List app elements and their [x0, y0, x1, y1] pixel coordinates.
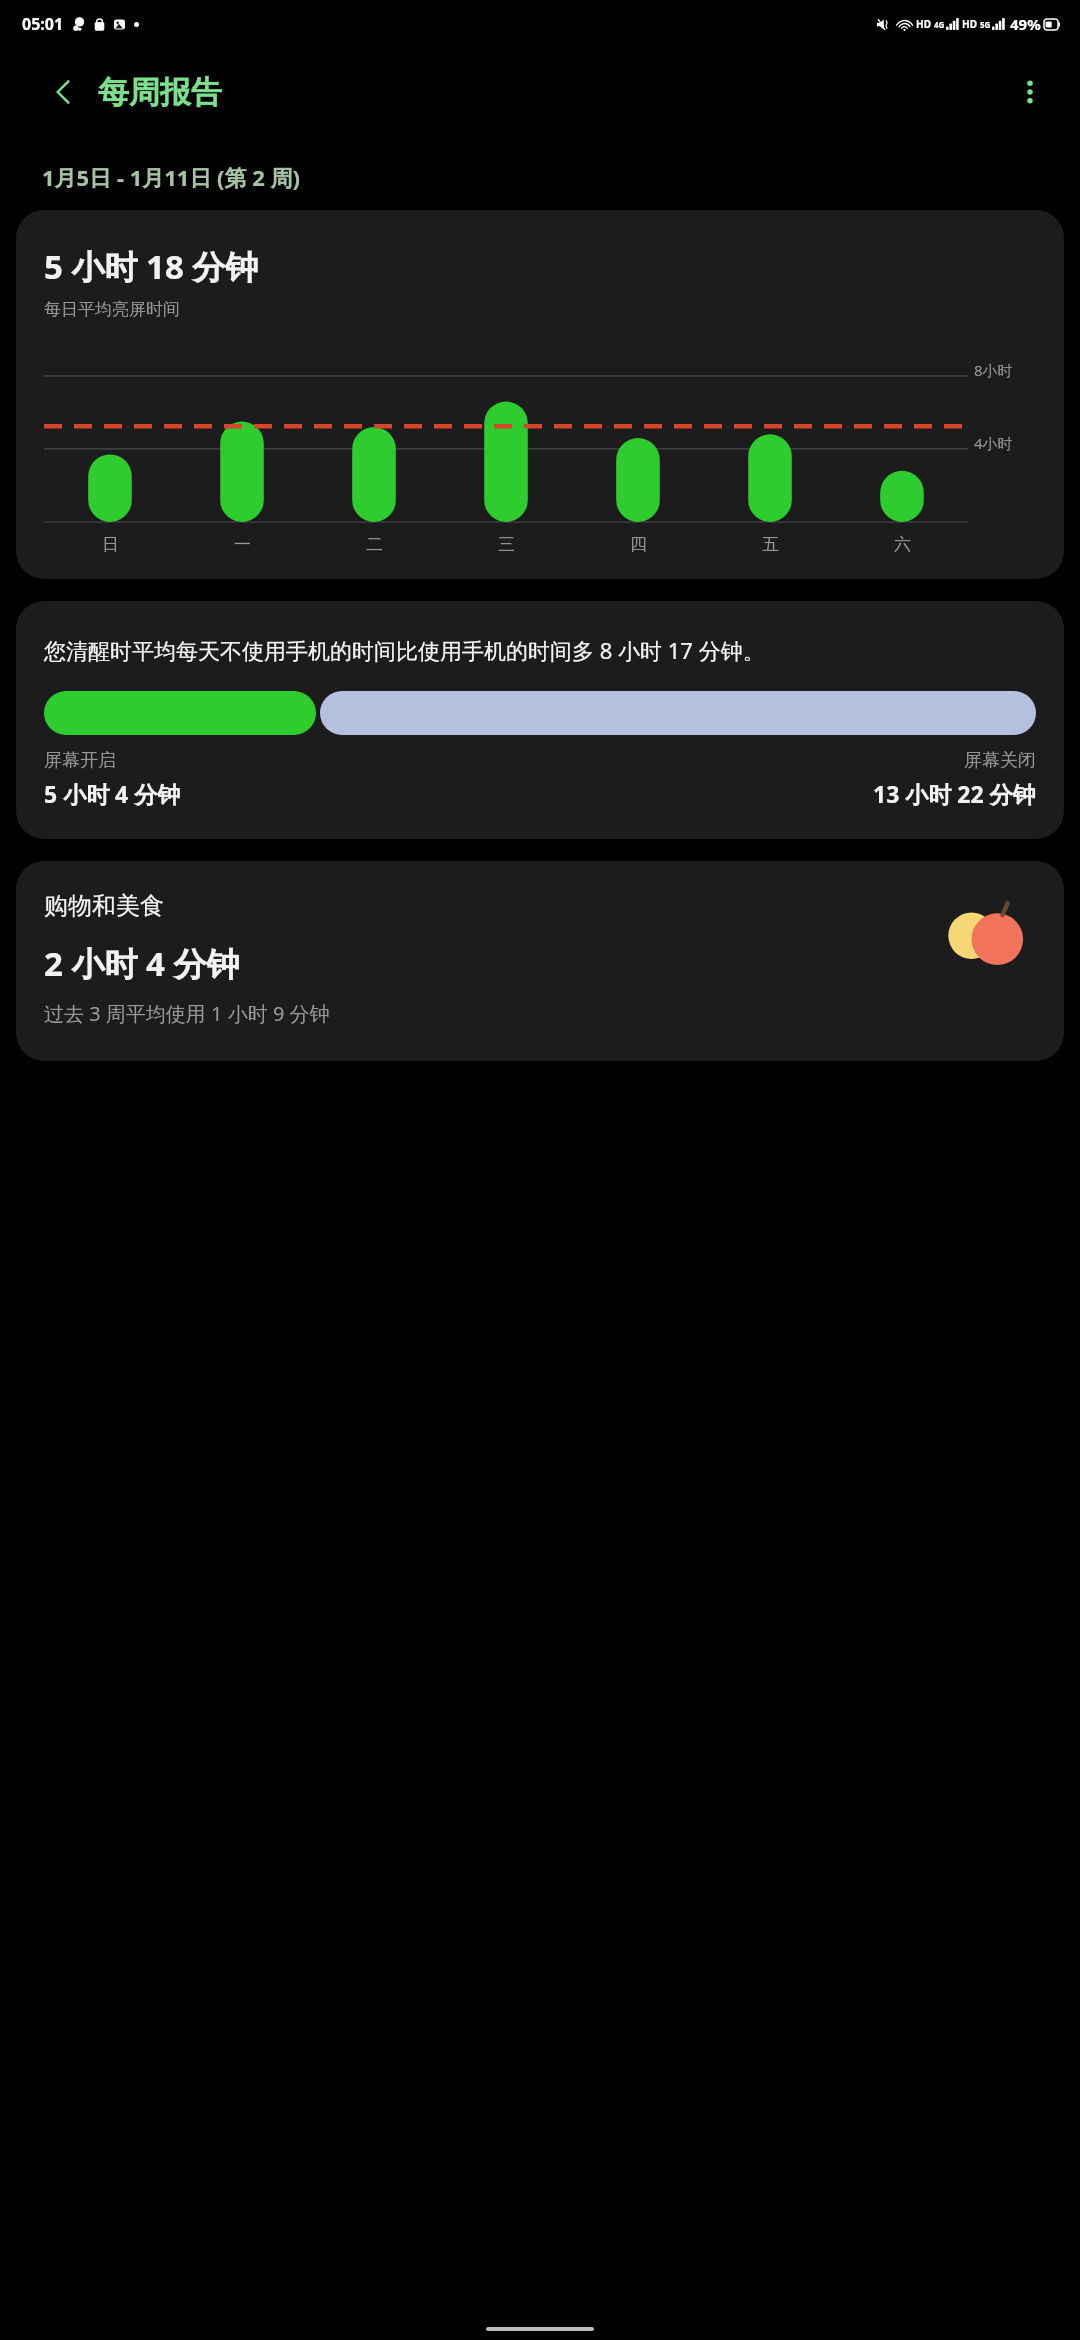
staticText: 每日平均亮屏时间 — [44, 299, 180, 320]
staticText: 四 — [630, 534, 647, 555]
staticText: 4G — [934, 19, 945, 30]
staticText: 您清醒时平均每天不使用手机的时间比使用手机的时间多 8 小时 17 分钟。 — [44, 635, 765, 665]
staticText: 13 小时 22 分钟 — [873, 778, 1036, 809]
staticText: 8小时 — [974, 360, 1013, 380]
staticText: HD — [916, 17, 931, 31]
staticText: 4小时 — [974, 433, 1013, 453]
button[interactable]: 5 小时 18 分钟 — [16, 210, 1064, 579]
button[interactable]: 您清醒时平均每天不使用手机的时间比使用手机的时间多 8 小时 17 分钟。 — [16, 601, 1064, 839]
staticText: 每周报告 — [98, 73, 222, 112]
staticText: 购物和美食 — [44, 891, 164, 921]
staticText: HD — [962, 17, 977, 31]
staticText: 2 小时 4 分钟 — [44, 941, 240, 986]
staticText: 5 小时 18 分钟 — [44, 244, 259, 289]
staticText: 三 — [498, 534, 515, 555]
staticText: 过去 3 周平均使用 1 小时 9 分钟 — [44, 1000, 330, 1027]
staticText: 屏幕开启 — [44, 749, 116, 772]
staticText: 屏幕关闭 — [964, 749, 1036, 772]
staticText: 五 — [762, 534, 779, 555]
staticText: 49% — [1010, 14, 1041, 34]
staticText: 5G — [980, 19, 991, 30]
staticText: 一 — [234, 534, 251, 555]
staticText: 日 — [102, 534, 119, 555]
staticText: 05:01 — [22, 13, 64, 35]
staticText: 1月5日 - 1月11日 (第 2 周) — [42, 162, 301, 192]
staticText: 二 — [366, 534, 383, 555]
staticText: 5 小时 4 分钟 — [44, 778, 181, 809]
button[interactable]: More options — [1006, 68, 1054, 116]
button[interactable]: Back — [40, 68, 88, 116]
staticText: 六 — [894, 534, 911, 555]
button[interactable]: 购物和美食 — [16, 861, 1064, 1061]
